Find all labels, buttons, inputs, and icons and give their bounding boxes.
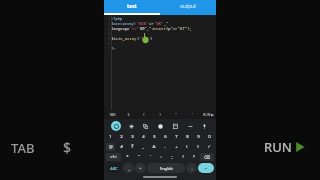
staticText: 67 [180,26,185,31]
button[interactable]: Settings [126,121,136,131]
button[interactable]: Emoji [155,121,165,131]
button[interactable]: ( [136,110,152,119]
staticText: ( [137,36,140,41]
button[interactable]: 7 [171,133,181,141]
button[interactable]: ? [189,153,199,161]
button[interactable]: 1 [106,133,115,141]
button[interactable]: output [160,0,216,13]
button[interactable]: ⌣ [135,163,146,173]
button[interactable]: $ [120,110,136,119]
staticText: " [175,112,177,117]
staticText: $ [127,112,130,117]
button[interactable]: ( [182,143,192,151]
staticText: test [127,3,137,10]
staticText: ! [182,154,184,160]
staticText: $i= [111,36,118,41]
staticText: 2 [105,21,110,26]
button[interactable]: Voice input [199,121,209,131]
button[interactable]: - [160,143,170,151]
button[interactable]: 2 [116,133,126,141]
button[interactable]: =\< [106,153,121,161]
staticText: ) [159,112,161,117]
button[interactable]: More [185,121,195,131]
staticText: ," [164,21,169,26]
staticText: 6 [164,134,167,140]
button[interactable]: ⌫ [200,153,214,161]
staticText: "856" [137,21,149,26]
button[interactable]: ! [178,153,188,161]
staticText: TAB [11,139,35,157]
button[interactable]: Translate [140,121,150,131]
button[interactable]: ₹ [127,143,137,151]
staticText: @ [109,144,113,150]
staticText: <?php [111,16,123,21]
button[interactable]: . [186,163,197,173]
staticText: ₹ [131,144,134,150]
staticText: 7 [175,134,178,140]
staticText: English [160,166,173,171]
button[interactable]: _ [138,143,148,151]
button[interactable]: , [123,163,134,173]
staticText: "58" [140,36,150,41]
button[interactable]: ) [152,110,168,119]
staticText: 3 [105,26,110,31]
staticText: $ [63,138,72,157]
staticText: 7 [105,46,110,51]
staticText: invert [152,26,166,31]
button[interactable]: test [104,0,160,13]
button[interactable]: 6 [160,133,170,141]
button[interactable]: Assistant [111,121,121,131]
staticText: ⌣ [139,166,142,170]
staticText: 3 [131,134,134,140]
staticText: => [149,21,154,26]
button[interactable]: " [134,153,144,161]
button[interactable]: ' [145,153,155,161]
staticText: =\< [110,154,117,160]
button[interactable]: * [122,153,133,161]
button[interactable]: / [204,143,214,151]
button[interactable]: TAB [8,138,38,158]
staticText: ; [171,154,173,160]
button[interactable]: 9 [193,133,203,141]
staticText: "=>" [130,26,140,31]
button[interactable]: 3 [127,133,137,141]
staticText: 8 [186,134,189,140]
button[interactable]: 5 [149,133,159,141]
staticText: " [138,154,140,160]
button[interactable]: 4 [138,133,148,141]
staticText: / [208,144,210,150]
staticText: , [128,166,130,171]
staticText: 5 [153,134,156,140]
staticText: : [160,154,162,160]
staticText: 0 [208,134,211,140]
button[interactable]: # [116,143,126,151]
staticText: ' [150,154,151,160]
staticText: ) [197,144,199,150]
staticText: ?> [111,46,116,51]
button[interactable]: ABC [106,163,122,173]
button[interactable]: : [156,153,166,161]
staticText: ABC [110,166,118,171]
button[interactable]: TAB [104,110,120,119]
button[interactable]: RUN ▶ [200,110,216,119]
button[interactable]: ; [167,153,177,161]
button[interactable]: ' [184,110,200,119]
button[interactable]: Clipboard [170,121,180,131]
staticText: 4 [105,31,110,36]
staticText: "98" [154,21,164,26]
staticText: RUN [264,138,292,156]
staticText: 1 [109,134,112,140]
button[interactable]: ↵ [198,163,214,173]
button[interactable]: English [147,163,185,173]
button[interactable]: ) [193,143,203,151]
button[interactable]: " [168,110,184,119]
staticText: _ [142,144,144,150]
staticText: . [191,166,193,171]
button[interactable]: 8 [182,133,192,141]
button[interactable]: $ [60,137,75,158]
button[interactable]: RUN [262,137,307,157]
button[interactable]: 0 [204,133,214,141]
button[interactable]: & [149,143,159,151]
button[interactable]: + [171,143,181,151]
button[interactable]: @ [106,143,115,151]
